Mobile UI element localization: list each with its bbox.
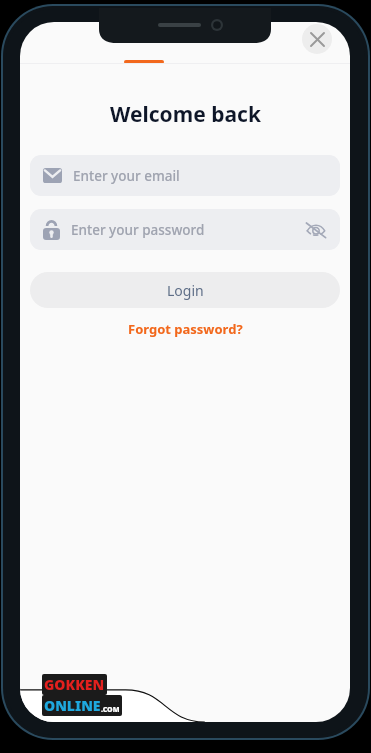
- staticText: GOKKEN: [44, 675, 105, 694]
- staticText: Login: [167, 281, 204, 300]
- staticText: Enter your password: [71, 221, 205, 239]
- button[interactable]: GOKKEN: [42, 674, 122, 716]
- button[interactable]: Enter your password: [30, 209, 340, 250]
- button[interactable]: Login: [30, 272, 340, 308]
- staticText: Enter your email: [73, 167, 180, 185]
- staticText: Forgot password?: [128, 320, 243, 338]
- staticText: .COM: [101, 705, 120, 715]
- staticText: Welcome back: [110, 100, 261, 129]
- button[interactable]: Enter your email: [30, 155, 340, 196]
- button[interactable]: Forgot password?: [20, 320, 350, 338]
- staticText: ONLINE: [44, 696, 101, 715]
- button[interactable]: Close: [302, 24, 332, 54]
- button[interactable]: [124, 60, 164, 64]
- button[interactable]: Show password: [305, 219, 327, 241]
